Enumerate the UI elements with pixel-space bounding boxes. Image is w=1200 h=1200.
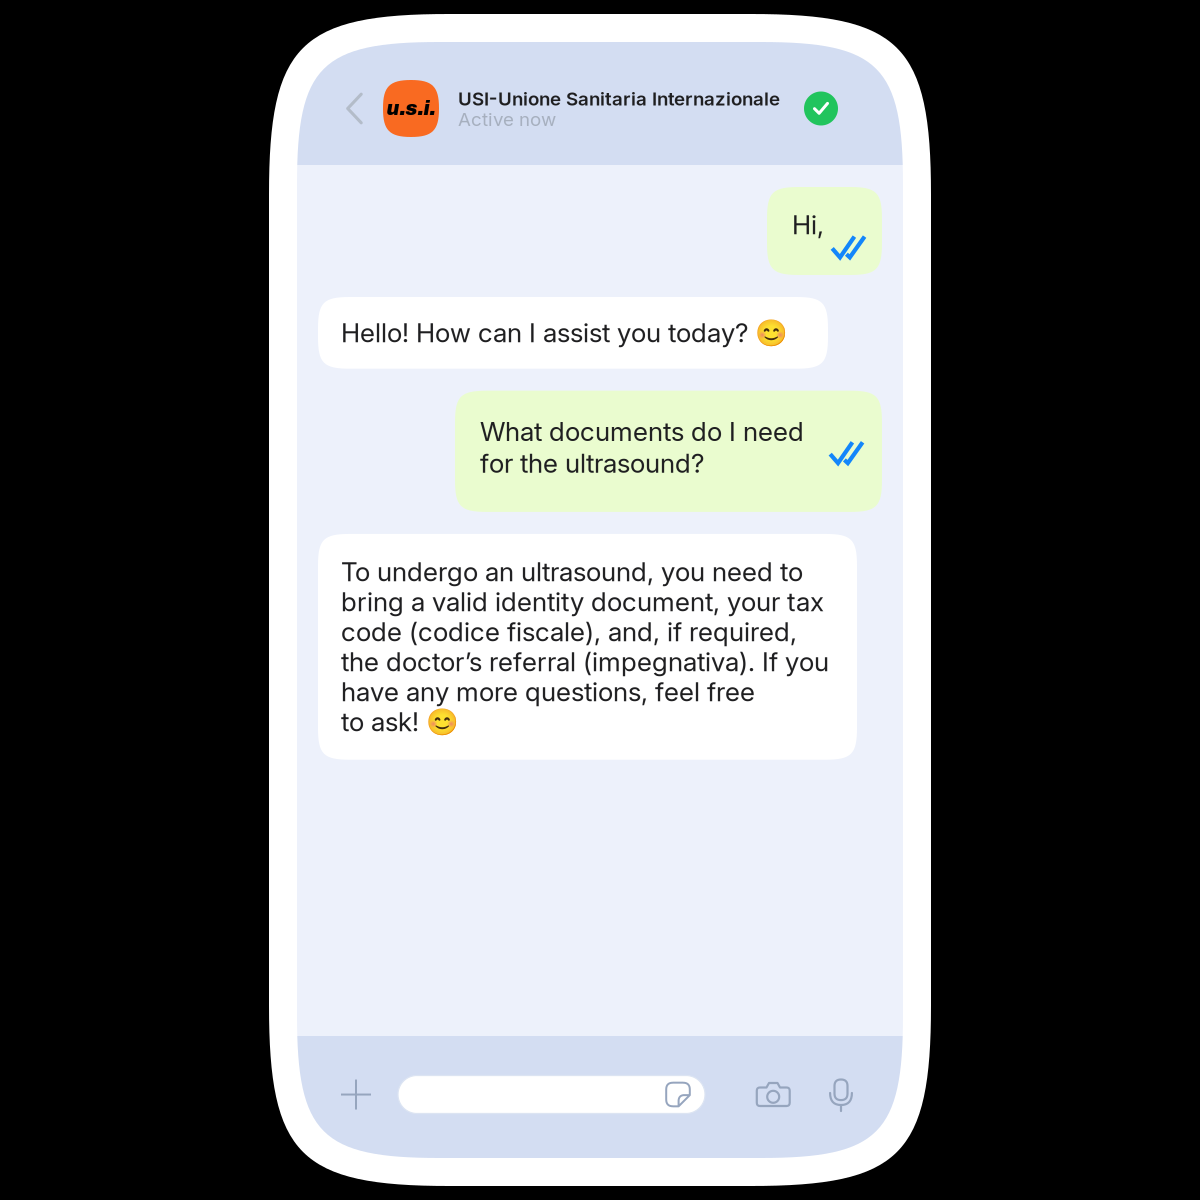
staticText: To undergo an ultrasound, you need to br… — [341, 556, 829, 738]
staticText: Hi, — [792, 209, 824, 241]
button[interactable]: Camera — [705, 1080, 828, 1109]
button[interactable]: Verified account — [796, 91, 869, 125]
staticText: u.s.i. — [386, 98, 435, 119]
button[interactable]: Attach — [297, 1078, 398, 1110]
button[interactable]: Voice message — [828, 1077, 881, 1112]
staticText: What documents do I need for the ultraso… — [480, 416, 804, 479]
staticText: Active now — [458, 108, 556, 131]
button[interactable]: Message field — [398, 1075, 705, 1113]
staticText: USI-Unione Sanitaria Internazionale — [458, 87, 780, 110]
button[interactable]: Back — [297, 70, 383, 146]
staticText: Hello! How can I assist you today? 😊 — [341, 317, 788, 349]
